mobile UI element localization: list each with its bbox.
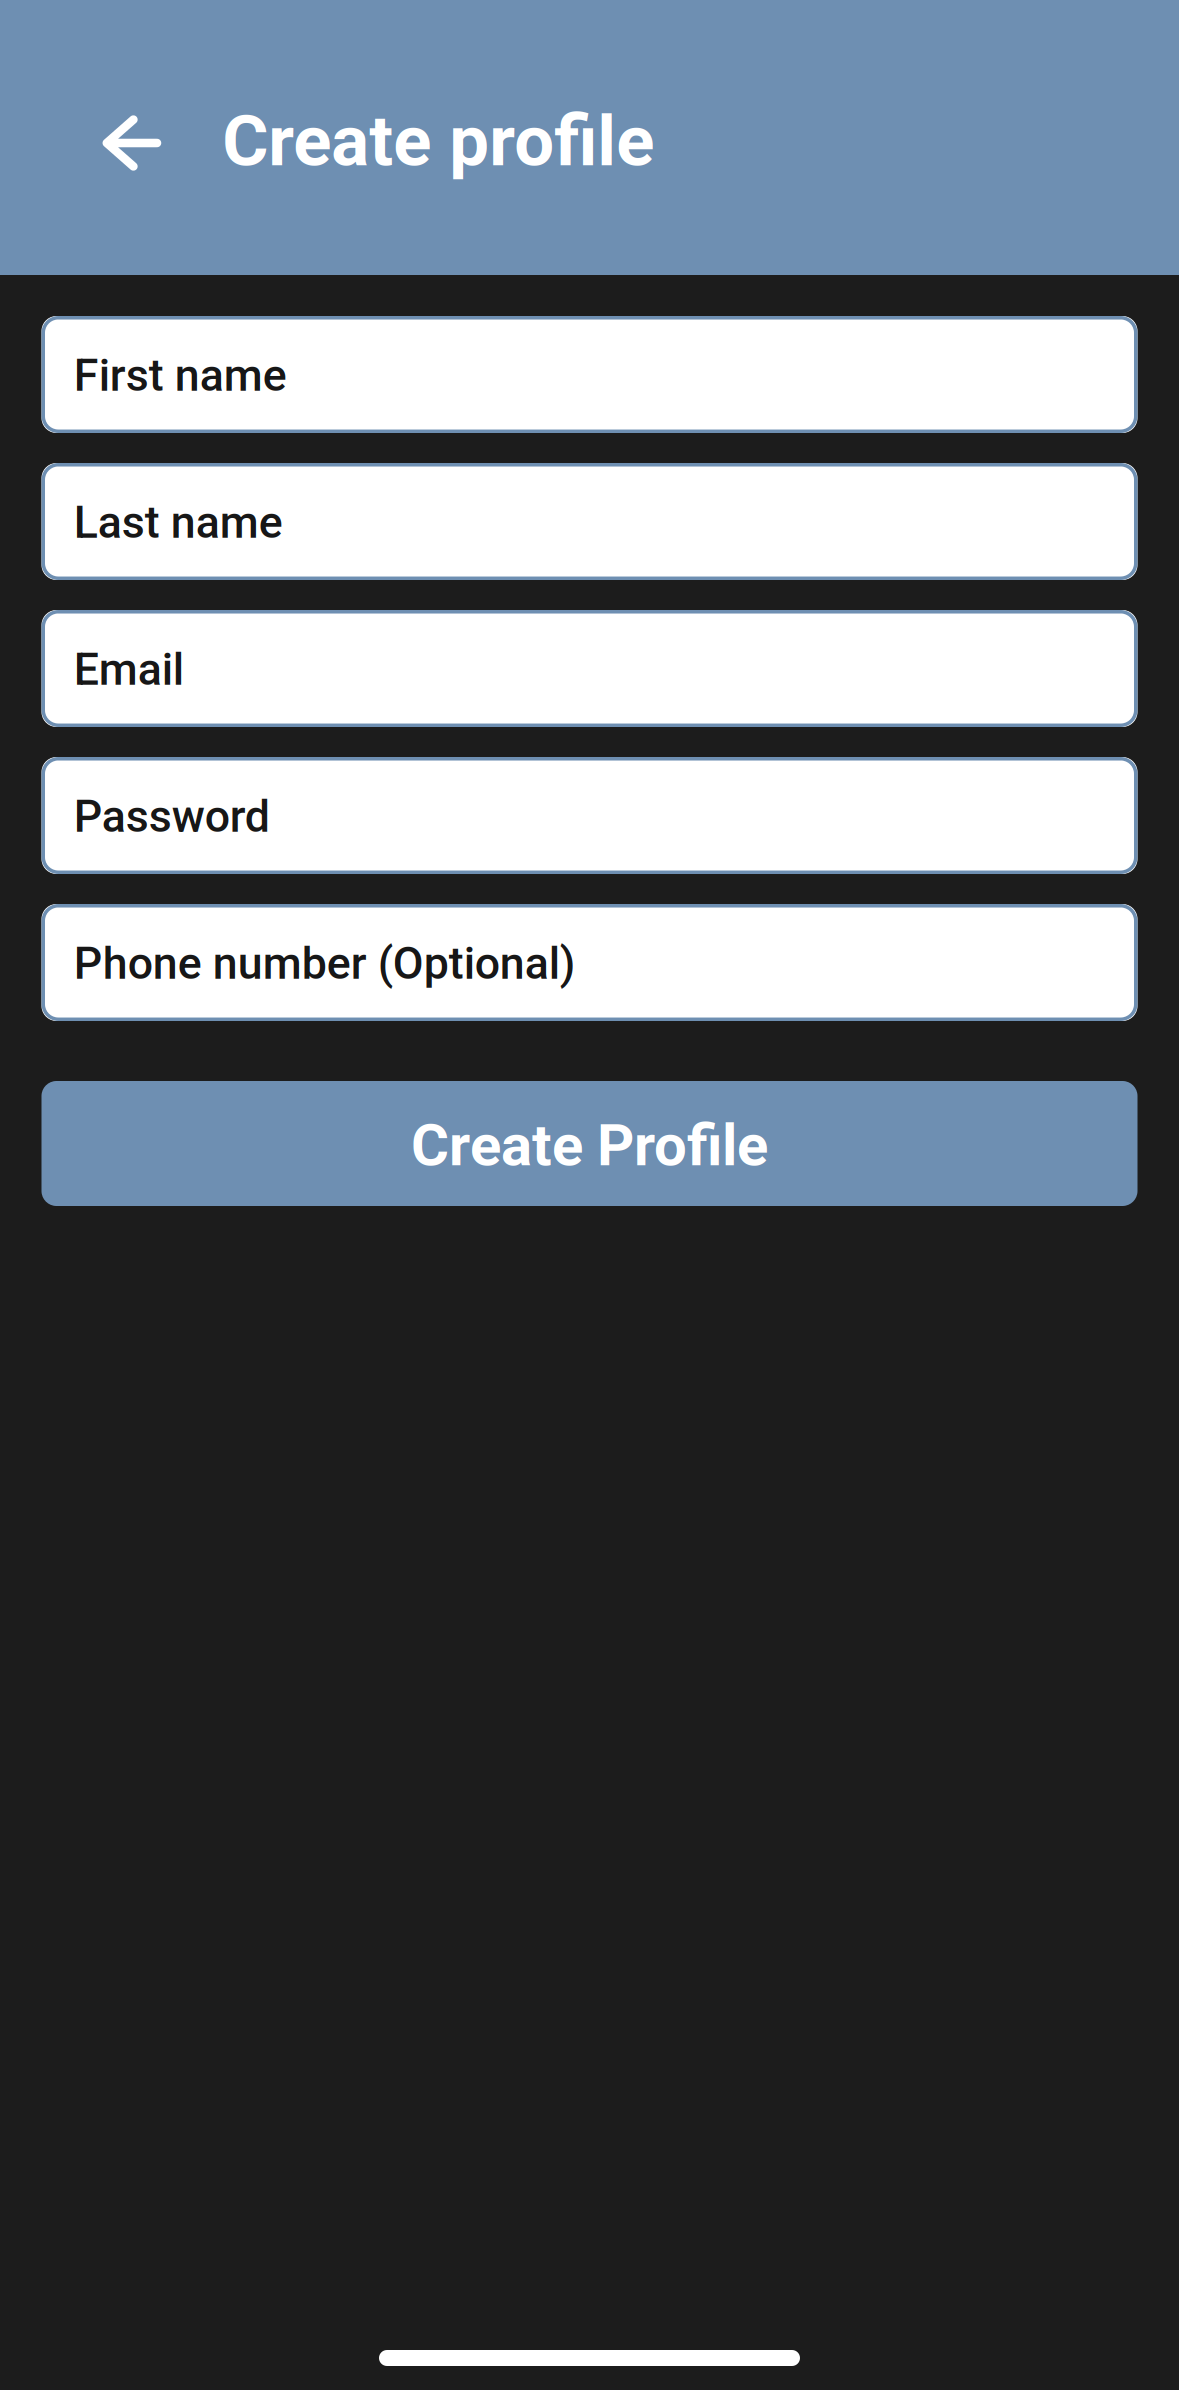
button[interactable]: Back [0,0,222,275]
staticText: Phone number (Optional) [74,937,576,990]
staticText: Email [74,643,184,696]
button[interactable]: First name [41,316,1137,433]
button[interactable]: Email [41,610,1137,727]
button[interactable]: Create Profile [41,1081,1137,1206]
staticText: Password [74,790,270,843]
button[interactable]: Phone number (Optional) [41,904,1137,1021]
staticText: Create Profile [411,1111,768,1179]
button[interactable]: Password [41,757,1137,874]
button[interactable]: Last name [41,463,1137,580]
staticText: Create profile [222,100,654,182]
staticText: First name [74,349,287,402]
staticText: Last name [74,496,283,549]
